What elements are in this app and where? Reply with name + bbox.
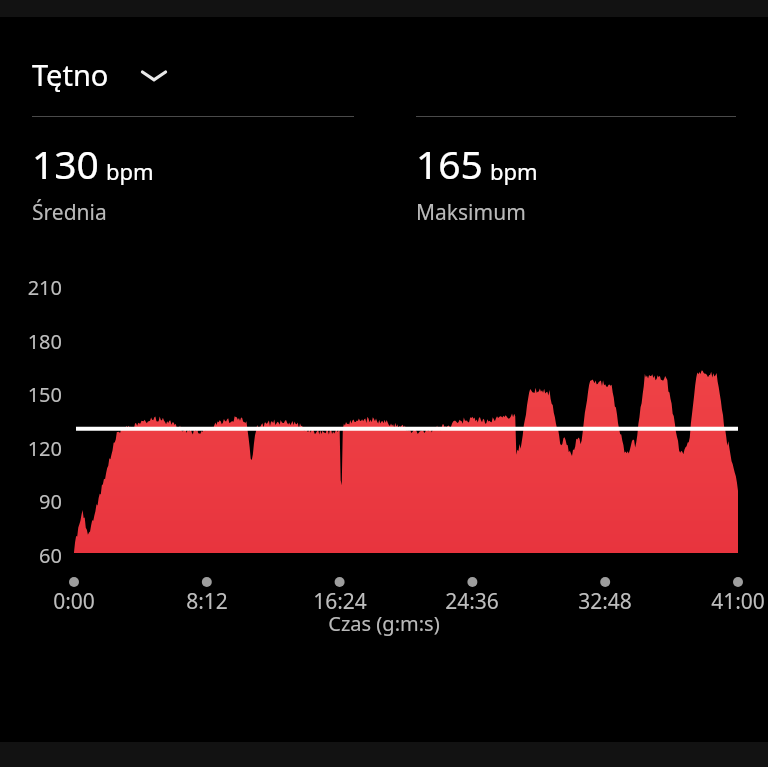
staticText: bpm xyxy=(106,156,154,186)
staticText: 41:00 xyxy=(683,587,768,616)
staticText: 130 xyxy=(32,137,99,190)
staticText: 24:36 xyxy=(417,587,527,616)
staticText: 16:24 xyxy=(285,587,395,616)
staticText: 150 xyxy=(0,381,62,408)
staticText: 32:48 xyxy=(550,587,660,616)
staticText: Czas (g:m:s) xyxy=(0,610,768,637)
staticText: 0:00 xyxy=(19,587,129,616)
staticText: Tętno xyxy=(32,55,109,94)
staticText: Średnia xyxy=(32,198,107,227)
staticText: bpm xyxy=(490,156,538,186)
staticText: 180 xyxy=(0,328,62,355)
staticText: 120 xyxy=(0,435,62,462)
staticText: 210 xyxy=(0,274,62,301)
staticText: 90 xyxy=(0,488,62,515)
staticText: 8:12 xyxy=(152,587,262,616)
button[interactable]: 165 xyxy=(384,116,768,227)
button[interactable]: Tętno xyxy=(32,55,171,94)
staticText: 165 xyxy=(416,137,483,190)
staticText: Maksimum xyxy=(416,198,526,227)
button[interactable]: 130 xyxy=(0,116,384,227)
other: Expand metric selector xyxy=(137,60,171,90)
staticText: 60 xyxy=(0,542,62,569)
